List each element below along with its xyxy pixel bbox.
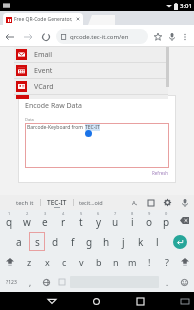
button[interactable]: f xyxy=(65,232,80,251)
button[interactable]: h xyxy=(99,232,114,251)
button[interactable]: Forward xyxy=(22,31,33,42)
button[interactable]: 5 xyxy=(72,210,90,231)
button[interactable]: Change language xyxy=(38,272,54,292)
staticText: a xyxy=(16,235,22,249)
button[interactable]: 0 xyxy=(158,210,175,231)
button[interactable]: Emoji xyxy=(175,272,194,292)
staticText: s xyxy=(35,235,40,249)
button[interactable]: 2 xyxy=(18,210,36,231)
button[interactable]: 1 xyxy=(0,210,18,231)
button[interactable]: Hide keyboard xyxy=(178,294,192,308)
button[interactable]: Email xyxy=(14,47,168,62)
staticText: . xyxy=(166,277,169,288)
staticText: n xyxy=(113,256,119,268)
button[interactable]: 8 xyxy=(124,210,141,231)
button[interactable]: 6 xyxy=(90,210,107,231)
button[interactable]: 4 xyxy=(54,210,72,231)
button[interactable]: Voice input xyxy=(180,198,189,207)
staticText: y xyxy=(96,215,102,229)
staticText: w xyxy=(23,215,31,229)
button[interactable]: v xyxy=(73,252,90,272)
staticText: r xyxy=(61,215,66,229)
staticText: d xyxy=(52,235,59,249)
staticText: VCard xyxy=(34,82,54,92)
staticText: Barcode-Keyboard from xyxy=(27,124,85,131)
button[interactable]: A, xyxy=(132,199,138,207)
button[interactable]: ? xyxy=(158,252,175,272)
button[interactable]: x xyxy=(38,252,56,272)
button[interactable]: Free QR-Code Generator, Cre xyxy=(3,13,83,25)
staticText: p xyxy=(163,215,170,229)
button[interactable]: , xyxy=(22,272,38,292)
button[interactable]: Recents xyxy=(132,293,148,309)
button[interactable]: Refresh xyxy=(152,170,169,176)
staticText: 1 xyxy=(8,211,11,216)
button[interactable]: g xyxy=(82,232,97,251)
staticText: , xyxy=(29,277,32,288)
button[interactable]: VCard xyxy=(14,79,168,94)
button[interactable]: Back xyxy=(4,31,15,42)
staticText: 3:01 xyxy=(180,2,192,10)
staticText: b xyxy=(96,256,102,268)
button[interactable]: tecit...oid xyxy=(79,199,103,206)
button[interactable]: c xyxy=(56,252,73,272)
staticText: 3 xyxy=(44,211,47,216)
button[interactable]: tech it xyxy=(16,199,34,207)
button[interactable]: Sticker xyxy=(54,272,70,292)
staticText: 0 xyxy=(165,211,168,216)
staticText: q xyxy=(6,215,13,229)
button[interactable]: qrcode.tec-it.com/en xyxy=(61,29,143,44)
button[interactable]: z xyxy=(20,252,38,272)
staticText: ? xyxy=(165,256,169,268)
button[interactable]: m xyxy=(124,252,141,272)
staticText: m xyxy=(128,256,137,268)
staticText: 8 xyxy=(131,211,134,216)
button[interactable]: j xyxy=(116,232,131,251)
button[interactable]: Event xyxy=(14,63,168,78)
staticText: o xyxy=(146,215,153,229)
staticText: Encode Raw Data xyxy=(25,101,82,111)
staticText: c xyxy=(62,256,67,268)
button[interactable]: 9 xyxy=(141,210,158,231)
button[interactable]: d xyxy=(47,232,63,251)
button[interactable]: s xyxy=(29,232,45,251)
staticText: k xyxy=(138,235,144,249)
staticText: g xyxy=(86,235,93,249)
staticText: j xyxy=(122,235,125,249)
button[interactable]: n xyxy=(107,252,124,272)
button[interactable]: Enter xyxy=(173,235,187,249)
button[interactable]: b xyxy=(90,252,107,272)
button[interactable]: TEC-IT xyxy=(47,198,67,208)
button[interactable]: Shift xyxy=(0,252,20,272)
button[interactable]: Backspace xyxy=(175,210,194,231)
button[interactable]: Reload xyxy=(40,31,51,42)
button[interactable]: More options xyxy=(179,31,190,42)
button[interactable]: ?123 xyxy=(0,272,22,292)
staticText: Event xyxy=(34,66,53,76)
button[interactable]: a xyxy=(11,232,27,251)
button[interactable]: l xyxy=(150,232,165,251)
button[interactable]: Home xyxy=(88,293,104,309)
button[interactable]: k xyxy=(133,232,148,251)
button[interactable]: 7 xyxy=(107,210,124,231)
staticText: i xyxy=(131,215,134,229)
staticText: e xyxy=(42,215,48,229)
button[interactable]: Clipboard xyxy=(146,198,155,207)
staticText: qrcode.tec-it.com/en xyxy=(70,33,129,41)
button[interactable]: Bookmark xyxy=(152,31,163,42)
button[interactable]: Settings xyxy=(163,198,172,207)
staticText: l xyxy=(156,235,159,249)
staticText: TEC-IT xyxy=(85,124,100,131)
staticText: 4 xyxy=(62,211,65,216)
staticText: u xyxy=(112,215,119,229)
staticText: 9 xyxy=(148,211,151,216)
button[interactable]: Voice search xyxy=(166,31,177,42)
staticText: 5 xyxy=(80,211,83,216)
button[interactable]: 3 xyxy=(36,210,54,231)
button[interactable]: Close tab xyxy=(75,16,81,22)
button[interactable]: Shift xyxy=(175,252,194,272)
button[interactable]: ! xyxy=(141,252,158,272)
button[interactable]: Back xyxy=(44,293,60,309)
button[interactable]: . xyxy=(159,272,175,292)
